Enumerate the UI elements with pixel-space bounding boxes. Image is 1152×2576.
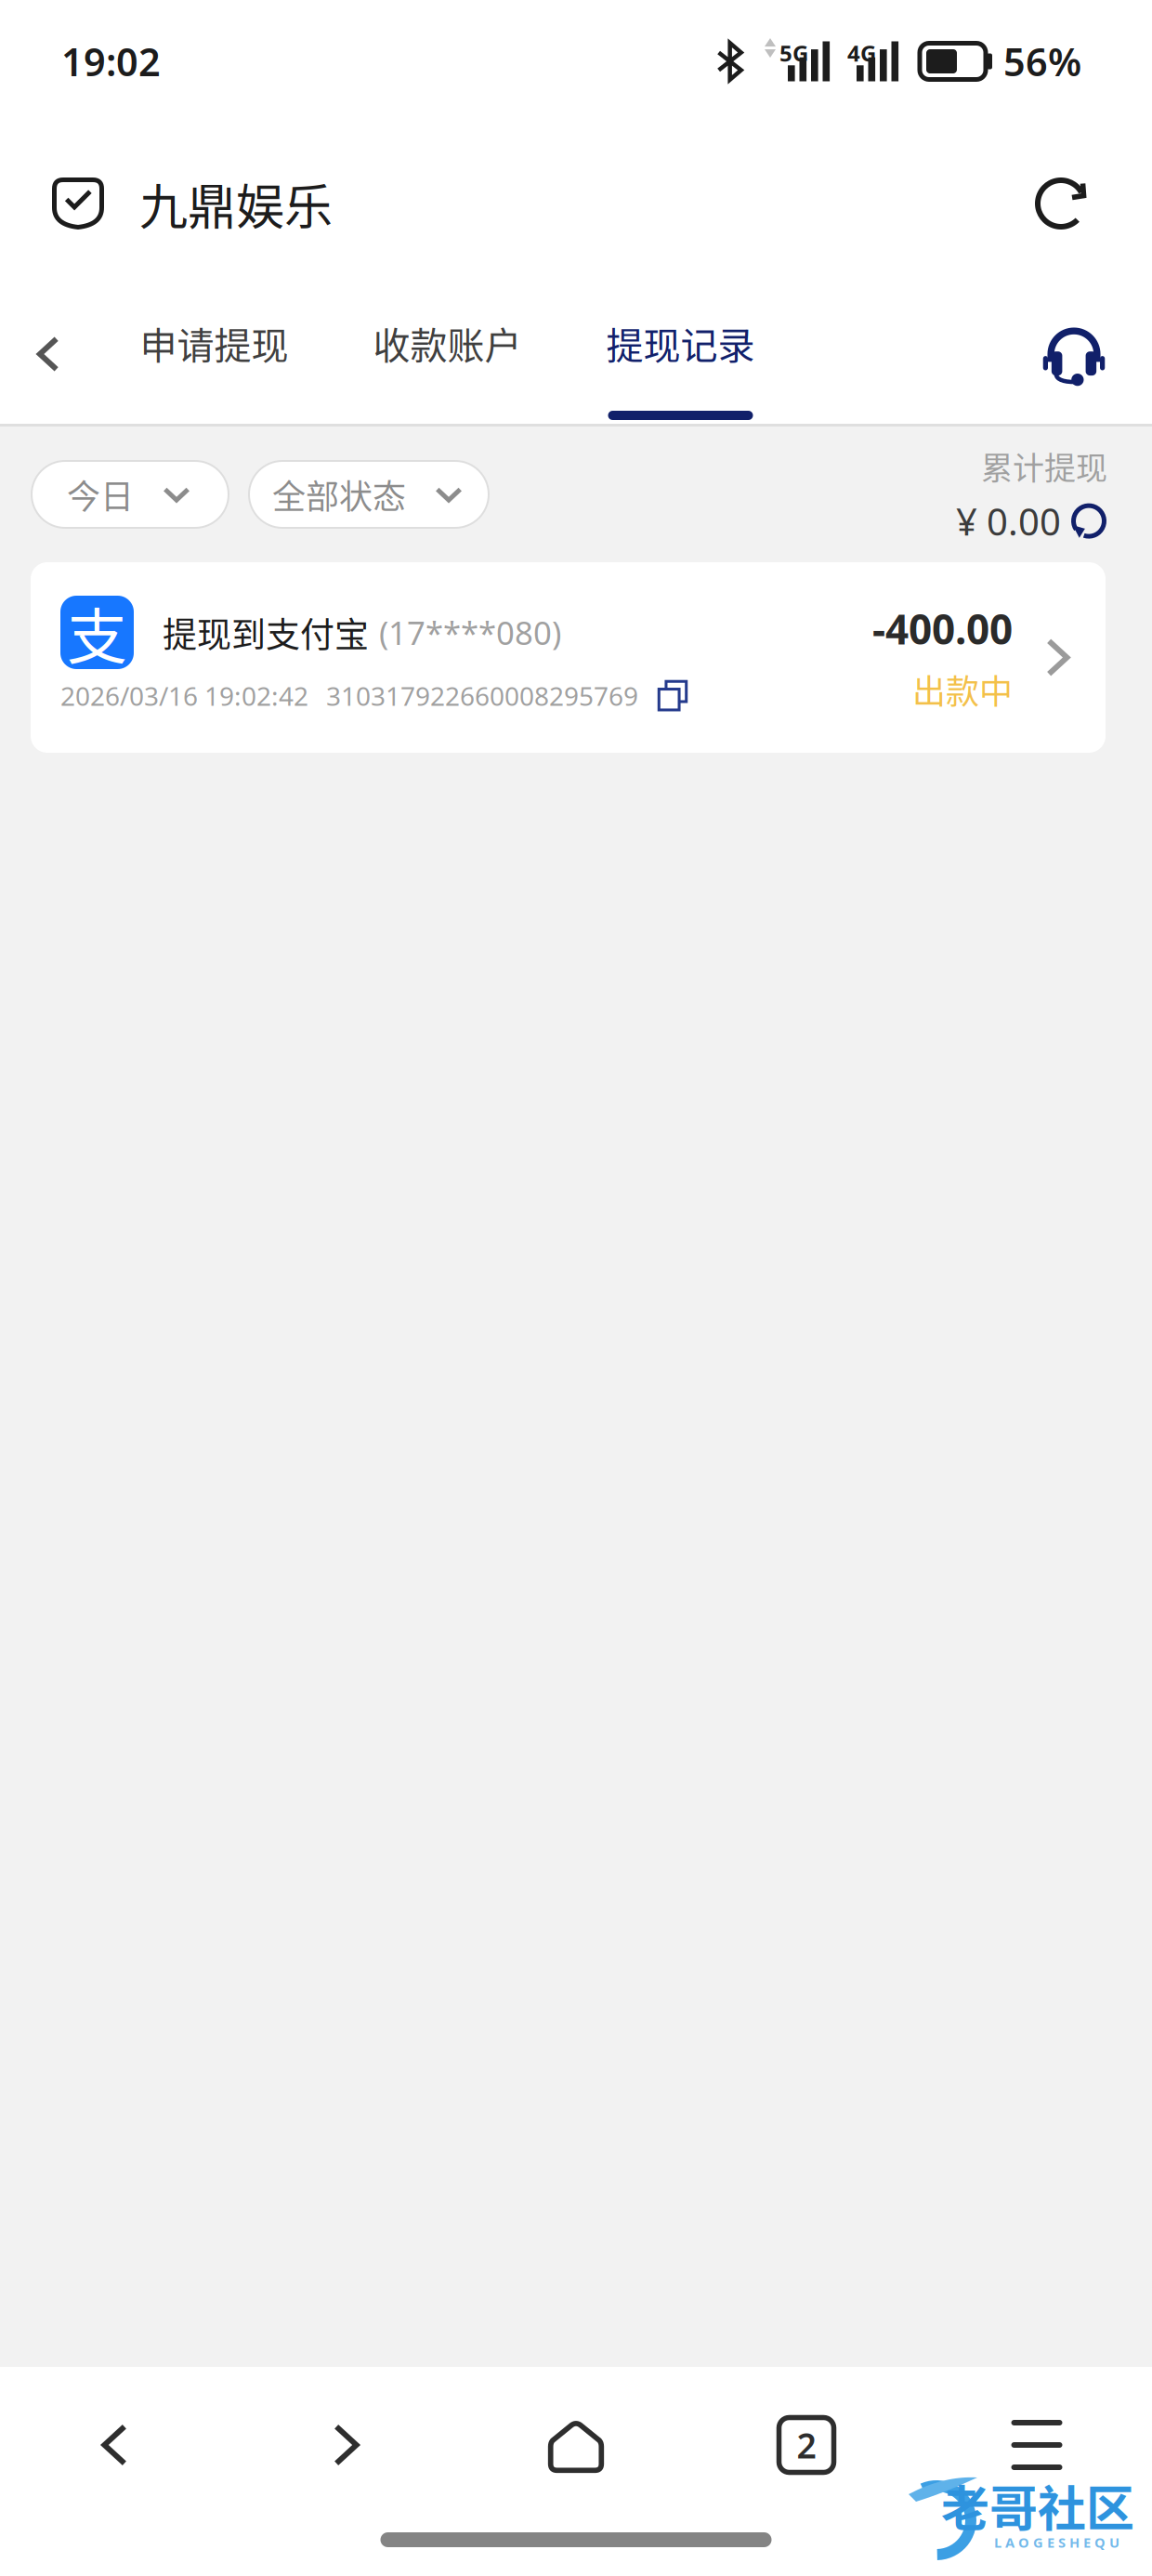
staticText: 申请提现	[140, 316, 288, 370]
button[interactable]: Menu	[922, 2394, 1152, 2496]
staticText: 310317922660008295769	[326, 678, 638, 713]
button[interactable]: Customer service	[1014, 286, 1134, 422]
staticText: (17****080)	[379, 611, 561, 654]
staticText: 今日	[67, 470, 134, 519]
button[interactable]: 提现记录	[564, 284, 797, 424]
staticText: 累计提现	[981, 443, 1107, 489]
button[interactable]: Reload page	[1013, 155, 1109, 252]
button[interactable]: 收款账户	[331, 284, 564, 424]
staticText: 提现记录	[606, 316, 755, 370]
staticText: 56%	[1003, 36, 1081, 87]
staticText: 出款中	[912, 665, 1013, 714]
button[interactable]: Go back	[0, 286, 98, 422]
button[interactable]: Home	[461, 2394, 691, 2496]
staticText: 支	[67, 589, 127, 676]
staticText: 2	[797, 2422, 816, 2468]
staticText: 收款账户	[373, 316, 522, 370]
button[interactable]: Refresh total	[1070, 502, 1107, 540]
button[interactable]: Back	[0, 2394, 230, 2496]
staticText: 19:02	[61, 36, 161, 87]
button[interactable]: 支	[31, 562, 1106, 753]
staticText: 2026/03/16 19:02:42	[60, 678, 308, 713]
staticText: -400.00	[872, 601, 1013, 656]
staticText: ¥ 0.00	[956, 496, 1061, 546]
staticText: 提现到支付宝	[163, 607, 369, 657]
staticText: 老哥社区	[941, 2470, 1134, 2540]
button[interactable]: Forward	[230, 2394, 461, 2496]
button[interactable]: 申请提现	[98, 284, 331, 424]
button[interactable]: Open tabs	[691, 2394, 922, 2496]
staticText: 4G	[847, 38, 876, 68]
staticText: L A O G E S H E Q U	[994, 2533, 1119, 2551]
staticText: 5G	[779, 38, 808, 68]
button[interactable]: 全部状态	[249, 461, 489, 528]
staticText: 九鼎娱乐	[139, 169, 333, 239]
staticText: 全部状态	[272, 470, 406, 519]
button[interactable]: 今日	[32, 461, 229, 528]
